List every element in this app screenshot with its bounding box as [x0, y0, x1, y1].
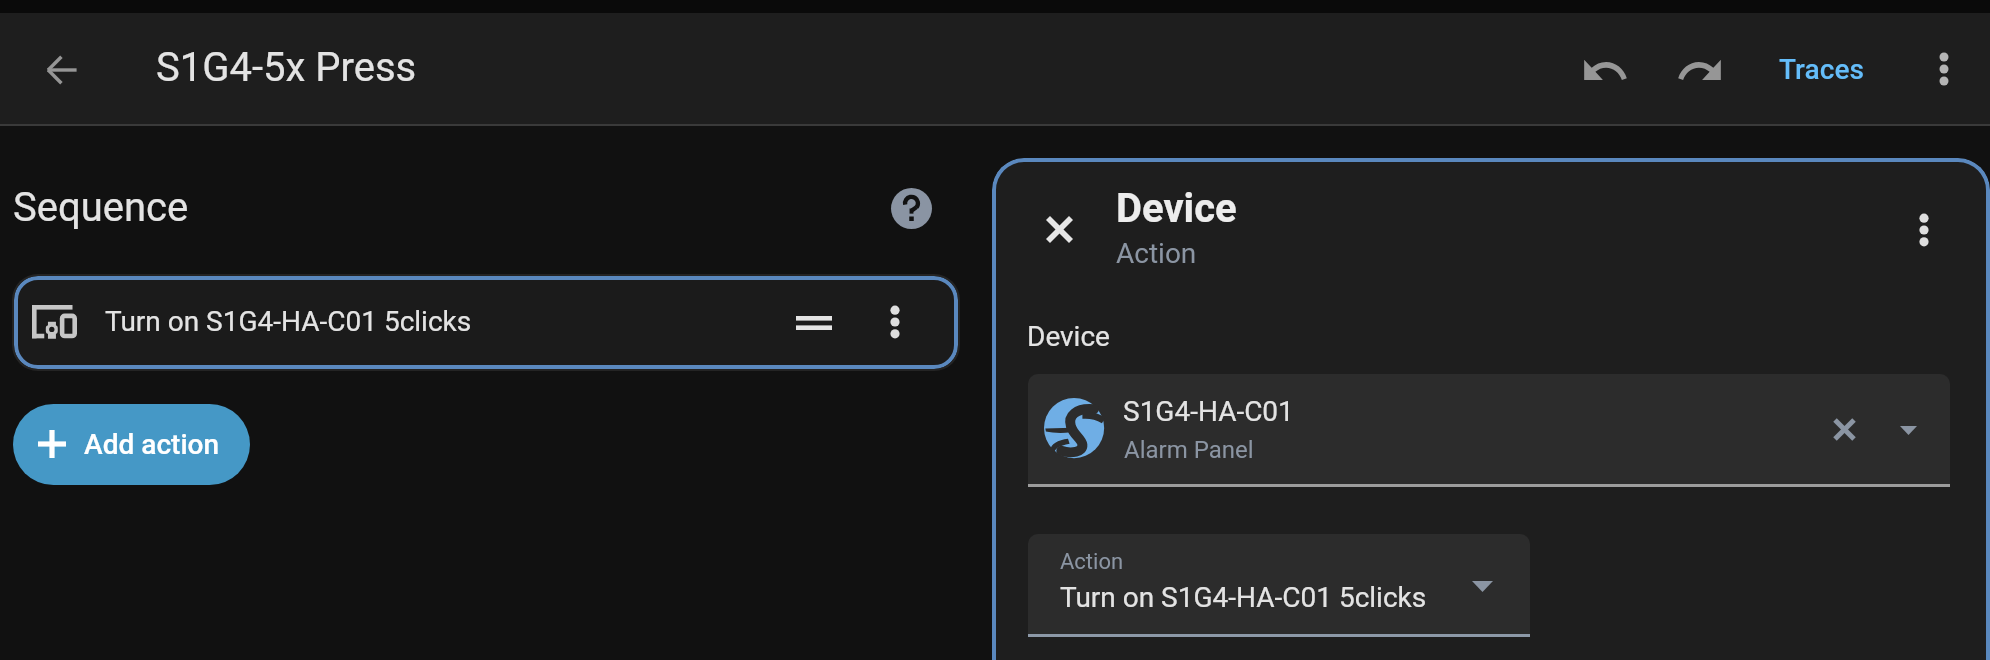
staticText: Sequence [13, 184, 189, 231]
button[interactable]: More options [1900, 25, 1988, 113]
staticText: Device [1116, 185, 1237, 232]
button[interactable]: Help [881, 178, 942, 239]
staticText: Add action [84, 428, 220, 461]
staticText: Turn on S1G4-HA-C01 5clicks [105, 305, 472, 338]
button[interactable]: Traces [1759, 29, 1884, 109]
staticText: Traces [1779, 53, 1864, 86]
staticText: S1G4-HA-C01 [1123, 395, 1294, 428]
button[interactable]: Close [1022, 192, 1097, 267]
button[interactable]: Options [1898, 204, 1950, 256]
button[interactable]: Reorder action [786, 295, 842, 351]
button[interactable]: Undo [1557, 25, 1653, 121]
staticText: S1G4-5x Press [156, 44, 417, 91]
staticText: Turn on S1G4-HA-C01 5clicks [1060, 581, 1427, 614]
button[interactable]: Redo [1652, 25, 1748, 121]
staticText: Alarm Panel [1124, 436, 1254, 464]
button[interactable]: Turn on S1G4-HA-C01 5clicks [14, 276, 958, 369]
staticText: Device [1027, 320, 1110, 353]
button[interactable]: Select action [1456, 560, 1508, 612]
staticText: Action [1116, 237, 1197, 270]
button[interactable]: Add action [13, 404, 250, 485]
button[interactable]: Clear device [1816, 401, 1872, 457]
button[interactable]: S1G4-HA-C01 [1028, 374, 1950, 487]
button[interactable]: Back [13, 22, 109, 118]
button[interactable]: Action [1028, 534, 1530, 637]
button[interactable]: Action options [869, 296, 921, 348]
staticText: Action [1060, 549, 1124, 575]
button[interactable]: Select device [1880, 402, 1936, 458]
